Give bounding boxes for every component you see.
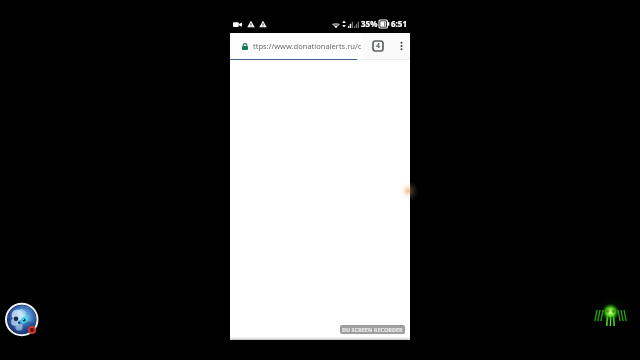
staticText: ttps://www.donationalerts.ru/c	[253, 41, 362, 51]
staticText: 35%	[361, 18, 378, 29]
staticText: 6:51	[391, 18, 407, 29]
staticText: DU SCREEN RECORDER	[342, 326, 403, 333]
button[interactable]: Floating widget	[585, 292, 635, 342]
button[interactable]: Floating donation bubble	[392, 178, 418, 204]
button[interactable]: Address bar	[232, 33, 363, 59]
button[interactable]: More options	[394, 39, 408, 53]
staticText: 4	[376, 41, 381, 51]
button[interactable]: Profile avatar	[4, 301, 41, 338]
button[interactable]: Tabs, 4 open	[371, 39, 385, 53]
